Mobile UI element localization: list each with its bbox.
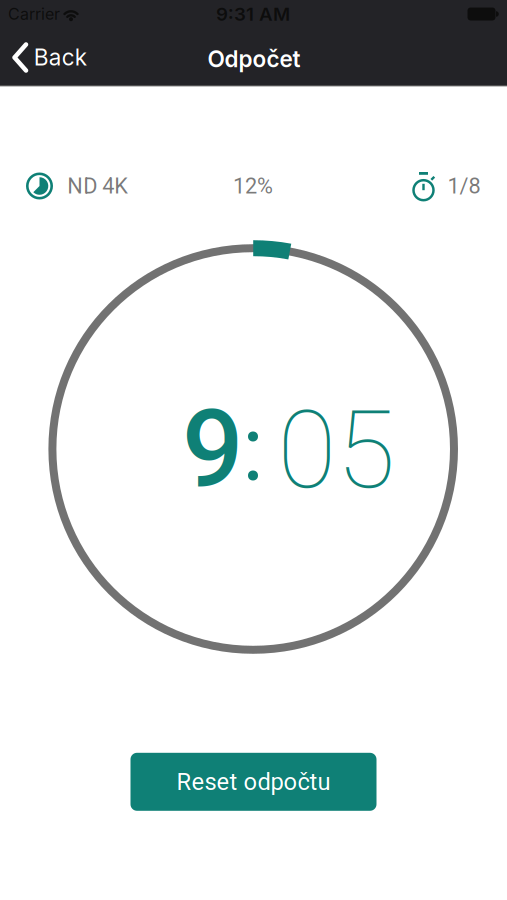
staticText: Back <box>34 44 87 71</box>
button[interactable]: Reset odpočtu <box>130 753 376 811</box>
staticText: Odpočet <box>207 45 300 73</box>
staticText: 1/8 <box>447 173 480 199</box>
staticText: Reset odpočtu <box>176 768 330 796</box>
staticText: 9:31 AM <box>216 3 290 25</box>
button[interactable]: Back <box>0 27 100 85</box>
staticText: 9 <box>182 386 243 513</box>
staticText: 12% <box>233 173 273 199</box>
staticText: 05 <box>277 388 395 513</box>
staticText: Carrier <box>8 4 60 24</box>
staticText: ND 4K <box>67 173 128 199</box>
